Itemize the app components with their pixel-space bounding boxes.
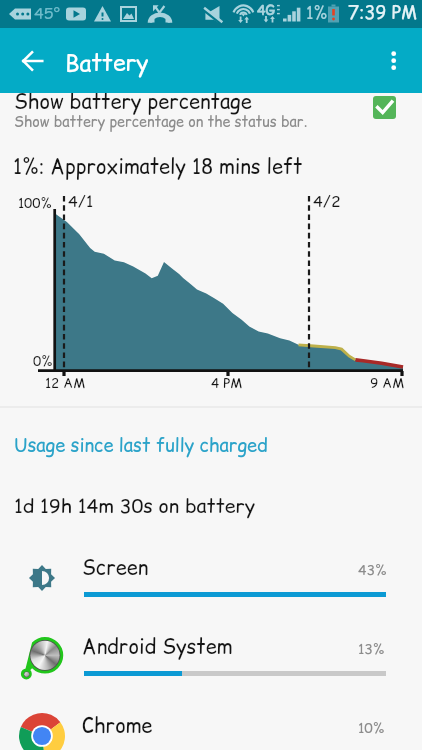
- staticText: Android System: [82, 633, 233, 661]
- button[interactable]: Chrome: [0, 687, 422, 750]
- staticText: 43%: [358, 560, 387, 580]
- staticText: 4/1: [68, 190, 94, 212]
- staticText: 1%: Approximately 18 mins left: [13, 153, 303, 181]
- staticText: Screen: [82, 554, 149, 582]
- staticText: 45°: [34, 2, 61, 24]
- staticText: Chrome: [82, 712, 153, 740]
- staticText: 0%: [33, 352, 53, 371]
- staticText: 12 AM: [45, 374, 86, 393]
- staticText: Usage since last fully charged: [14, 433, 268, 458]
- staticText: 4 PM: [211, 374, 243, 393]
- button[interactable]: Show battery percentage: [0, 72, 422, 132]
- button[interactable]: Screen: [0, 529, 422, 608]
- staticText: 1%: [306, 2, 327, 25]
- staticText: Show battery percentage on the status ba…: [14, 112, 308, 132]
- staticText: Battery: [65, 47, 149, 79]
- staticText: 4G: [257, 0, 276, 20]
- staticText: 9 AM: [370, 374, 405, 393]
- button[interactable]: Android System: [0, 608, 422, 687]
- staticText: 100%: [18, 194, 52, 213]
- staticText: 1d 19h 14m 30s on battery: [14, 492, 256, 519]
- staticText: 10%: [358, 718, 385, 738]
- button[interactable]: Usage since last fully charged: [0, 425, 422, 465]
- staticText: 7:39 PM: [348, 0, 417, 25]
- button[interactable]: More options: [378, 40, 410, 72]
- button[interactable]: Navigate up: [17, 42, 49, 74]
- staticText: 13%: [358, 639, 385, 659]
- staticText: Show battery percentage: [14, 88, 252, 116]
- staticText: 4/2: [313, 190, 341, 212]
